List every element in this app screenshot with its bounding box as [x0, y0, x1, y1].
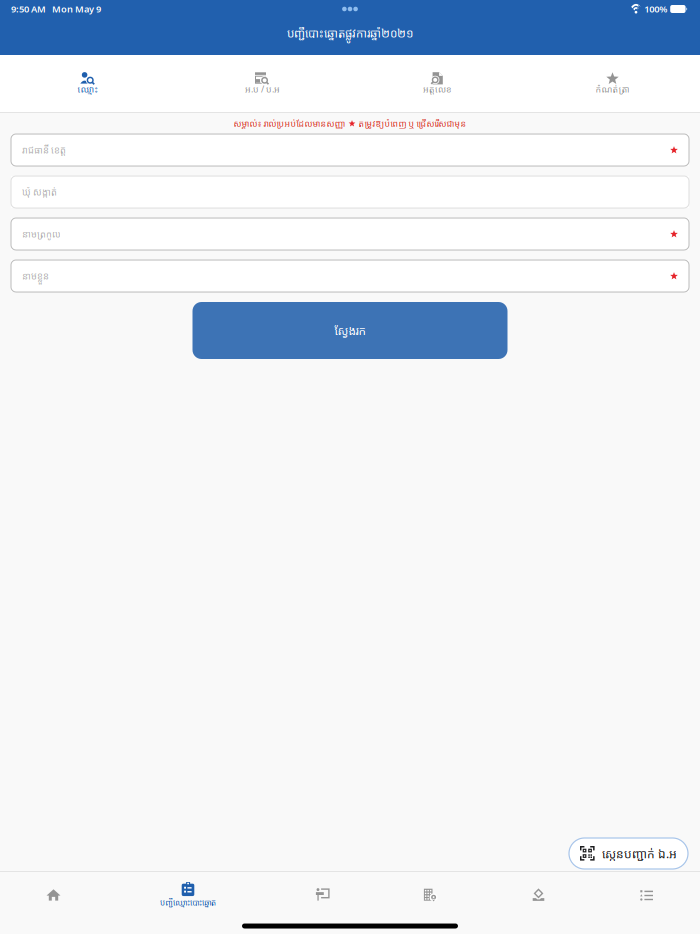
button[interactable]: អត្តលេខ	[350, 55, 525, 112]
button[interactable]: កំណត់ត្រា	[525, 55, 700, 112]
button[interactable]: Training	[299, 872, 346, 918]
staticText: នាមខ្លួន	[22, 270, 49, 282]
staticText: តម្រូវឱ្យបំពេញ ឬ ជ្រើសរើសជាមុន	[358, 118, 466, 129]
button[interactable]: Voter list	[138, 872, 238, 918]
staticText: កំណត់ត្រា	[595, 83, 629, 95]
staticText: អត្តលេខ	[423, 83, 452, 95]
button[interactable]: ស្កេនបញ្ជាក់ ឯ.អ	[569, 838, 688, 869]
staticText: បញ្ជីបោះឆ្នោតផ្លូវការឆ្នាំ២០២១	[287, 25, 413, 41]
staticText: Mon May 9	[46, 3, 101, 15]
button[interactable]: ឈ្មោះ	[0, 55, 175, 112]
staticText: ឃុំ សង្កាត់	[22, 186, 57, 198]
button[interactable]: Vote	[515, 872, 562, 918]
button[interactable]: Home	[30, 872, 77, 918]
staticText: ស្វែងរក	[334, 322, 365, 338]
staticText: អ.ប / ប.អ	[245, 83, 280, 95]
staticText: ស្កេនបញ្ជាក់ ឯ.អ	[602, 845, 677, 862]
staticText: ឈ្មោះ	[77, 83, 97, 95]
button[interactable]: អ.ប / ប.អ	[175, 55, 350, 112]
staticText: នាមត្រកូល	[22, 228, 61, 240]
staticText: 9:50 AM	[11, 3, 46, 15]
button[interactable]: Polling station	[407, 872, 454, 918]
staticText: សម្គាល់៖ រាល់ប្រអប់ដែលមានសញ្ញា	[233, 118, 345, 129]
staticText: រាជធានី ខេត្ត	[22, 144, 66, 156]
button[interactable]: More	[623, 872, 670, 918]
staticText: 100%	[644, 3, 667, 15]
button[interactable]: ស្វែងរក	[192, 302, 507, 359]
staticText: បញ្ជីឈ្មោះបោះឆ្នោត	[160, 897, 216, 908]
